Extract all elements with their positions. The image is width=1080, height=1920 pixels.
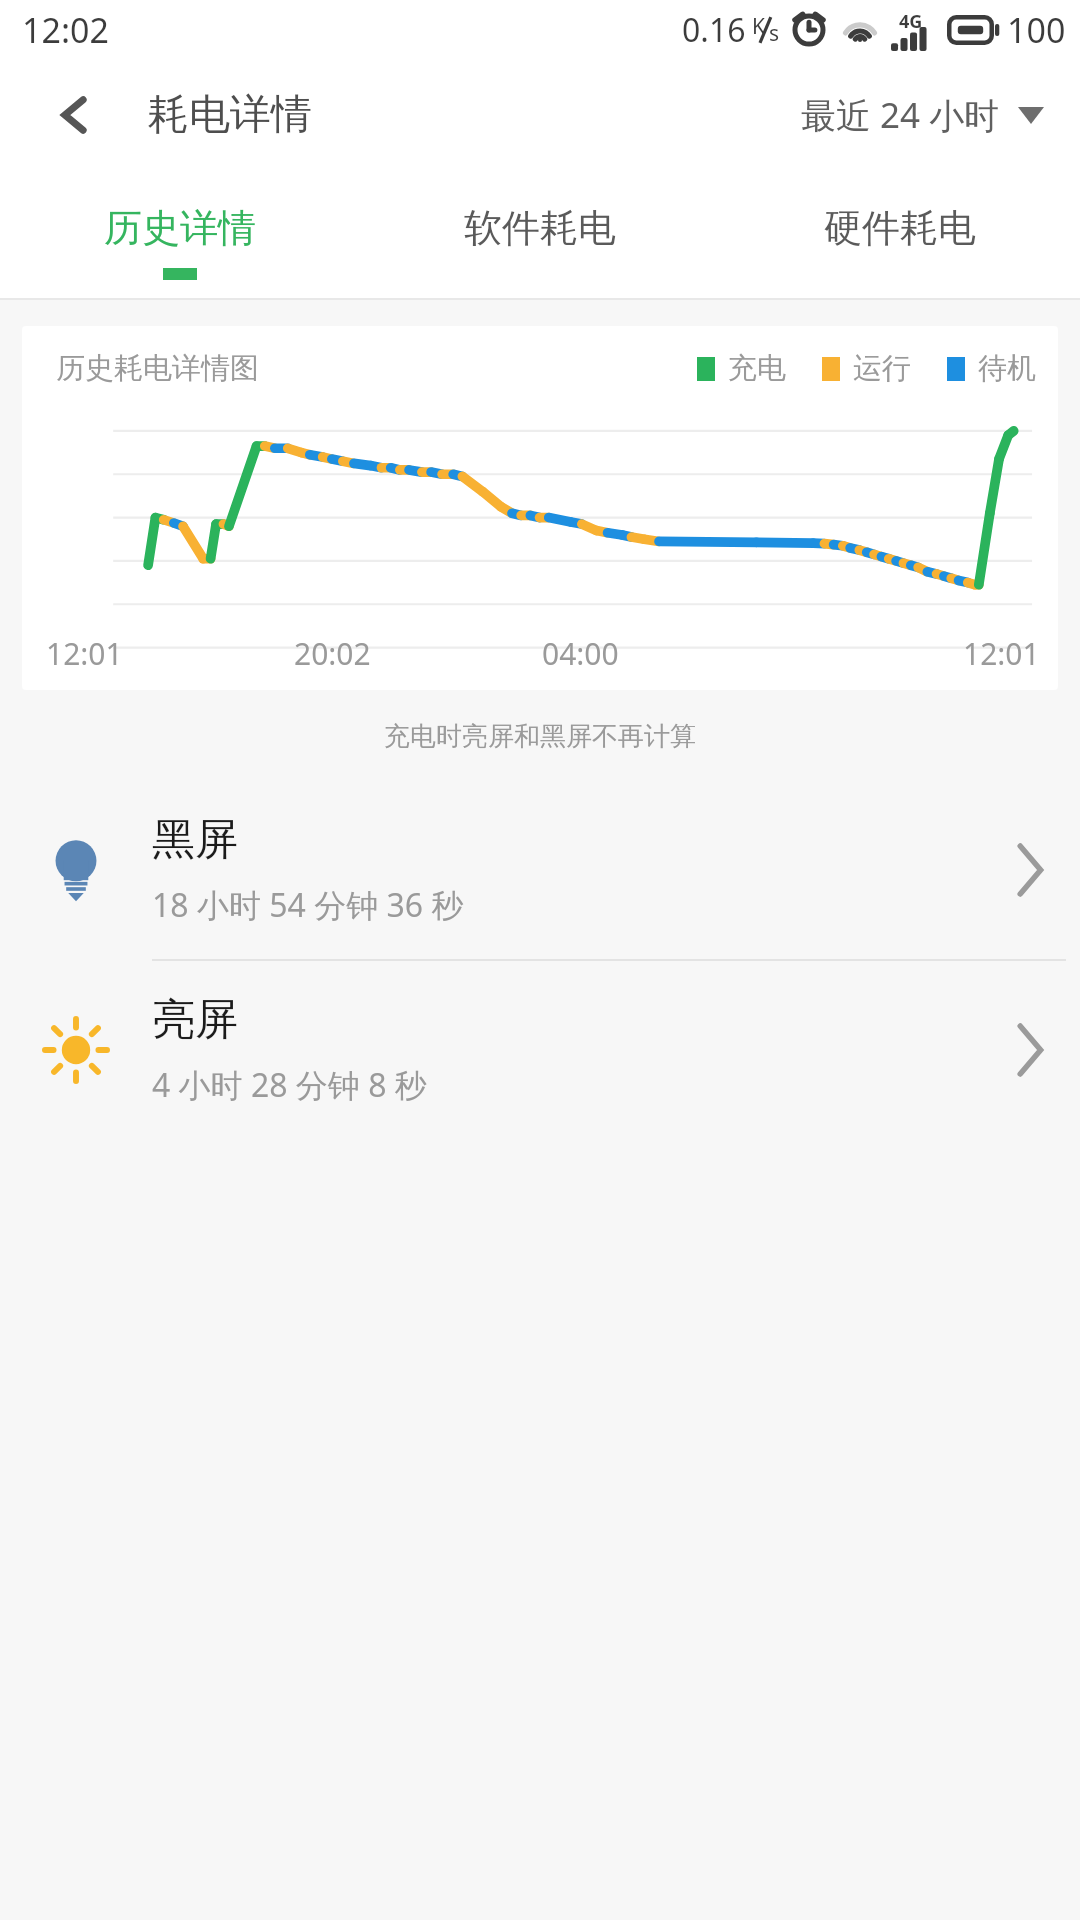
staticText: 硬件耗电 bbox=[824, 204, 976, 252]
button[interactable]: 最近 24 小时 bbox=[801, 91, 1044, 139]
button[interactable]: 亮屏 bbox=[0, 961, 1080, 1139]
staticText: 0.16 bbox=[682, 8, 746, 52]
staticText: s bbox=[769, 19, 780, 48]
staticText: 亮屏 bbox=[152, 993, 238, 1047]
staticText: 运行 bbox=[853, 350, 911, 387]
staticText: 待机 bbox=[978, 350, 1036, 387]
staticText: 充电时亮屏和黑屏不再计算 bbox=[0, 720, 1080, 753]
staticText: 12:01 bbox=[46, 633, 123, 674]
staticText: 充电 bbox=[728, 350, 786, 387]
staticText: 历史详情 bbox=[104, 204, 256, 252]
staticText: 黑屏 bbox=[152, 813, 238, 867]
staticText: 最近 24 小时 bbox=[801, 91, 1000, 139]
button[interactable]: 硬件耗电 bbox=[720, 170, 1080, 298]
staticText: 历史耗电详情图 bbox=[56, 350, 259, 387]
staticText: 18 小时 54 分钟 36 秒 bbox=[152, 883, 464, 927]
staticText: 4 小时 28 分钟 8 秒 bbox=[152, 1063, 427, 1107]
staticText: K bbox=[752, 12, 765, 41]
button[interactable]: 历史详情 bbox=[0, 170, 360, 298]
button[interactable]: Back bbox=[46, 86, 104, 144]
staticText: 耗电详情 bbox=[148, 89, 312, 141]
staticText: 100 bbox=[1007, 7, 1066, 53]
staticText: 4G bbox=[899, 9, 923, 34]
staticText: 12:01 bbox=[963, 633, 1040, 674]
staticText: 04:00 bbox=[542, 633, 619, 674]
button[interactable]: 黑屏 bbox=[0, 781, 1080, 959]
staticText: 20:02 bbox=[294, 633, 371, 674]
staticText: 12:02 bbox=[22, 7, 109, 53]
staticText: 软件耗电 bbox=[464, 204, 616, 252]
button[interactable]: 软件耗电 bbox=[360, 170, 720, 298]
